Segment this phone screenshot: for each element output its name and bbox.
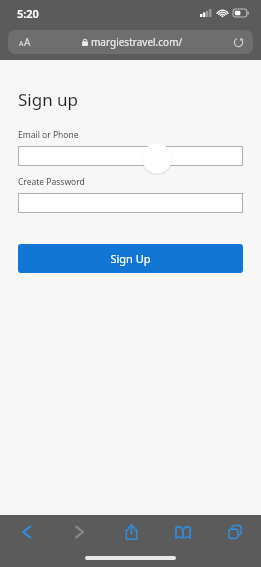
- button[interactable]: Bookmarks: [157, 515, 209, 549]
- button[interactable]: Tabs: [209, 515, 261, 549]
- button[interactable]: Text size options: [8, 30, 253, 54]
- staticText: 5:20: [17, 6, 39, 21]
- button[interactable]: Sign Up: [18, 244, 243, 273]
- staticText: A: [24, 35, 31, 49]
- button[interactable]: Text size options: [8, 30, 42, 54]
- staticText: Sign up: [18, 88, 79, 111]
- button[interactable]: Forward: [53, 515, 105, 549]
- button[interactable]: [18, 146, 243, 166]
- staticText: Email or Phone: [18, 129, 79, 141]
- button[interactable]: Back: [0, 515, 53, 549]
- button[interactable]: Reload page: [223, 30, 253, 54]
- button[interactable]: Share: [105, 515, 157, 549]
- staticText: margiestravel.com/: [91, 35, 183, 49]
- button[interactable]: [18, 193, 243, 213]
- staticText: Create Password: [18, 176, 85, 188]
- staticText: Sign Up: [110, 251, 151, 266]
- staticText: A: [19, 39, 24, 49]
